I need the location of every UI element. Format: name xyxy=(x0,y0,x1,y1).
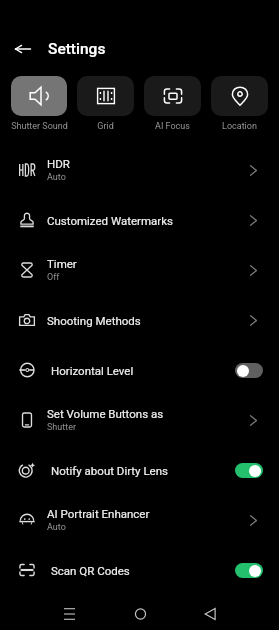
staticText: Settings xyxy=(48,40,106,58)
button[interactable]: AI Portrait Enhancer xyxy=(0,495,279,545)
button[interactable]: HDR xyxy=(0,145,279,195)
button[interactable]: Recents xyxy=(34,598,105,630)
staticText: Off xyxy=(47,272,60,283)
button[interactable]: Back xyxy=(6,32,39,65)
button[interactable]: Scan QR Codes xyxy=(0,545,279,595)
button[interactable]: On xyxy=(235,463,263,478)
button[interactable]: Off xyxy=(235,363,263,378)
staticText: Timer xyxy=(47,257,77,270)
button[interactable]: Customized Watermarks xyxy=(0,195,279,245)
staticText: Scan QR Codes xyxy=(51,564,130,577)
staticText: AI Focus xyxy=(155,121,190,132)
button[interactable]: Horizontal Level xyxy=(0,345,279,395)
staticText: Customized Watermarks xyxy=(47,214,173,227)
button[interactable]: Shutter Sound xyxy=(11,76,67,135)
button[interactable]: On xyxy=(235,563,263,578)
staticText: Shutter xyxy=(47,422,76,433)
button[interactable]: AI Focus xyxy=(144,76,201,135)
button[interactable]: Location xyxy=(211,76,268,135)
staticText: Grid xyxy=(97,121,114,132)
staticText: Auto xyxy=(47,172,66,183)
button[interactable]: Notify about Dirty Lens xyxy=(0,445,279,495)
staticText: Auto xyxy=(47,522,66,533)
staticText: Set Volume Buttons as xyxy=(47,407,164,420)
button[interactable]: Back xyxy=(175,598,245,630)
staticText: Notify about Dirty Lens xyxy=(51,464,168,477)
staticText: AI Portrait Enhancer xyxy=(47,507,150,520)
button[interactable]: Timer xyxy=(0,245,279,295)
button[interactable]: Grid xyxy=(77,76,134,135)
staticText: Shutter Sound xyxy=(11,121,67,132)
button[interactable]: Set Volume Buttons as xyxy=(0,395,279,445)
staticText: Shooting Methods xyxy=(47,314,141,327)
staticText: HDR xyxy=(47,157,70,170)
button[interactable]: Home xyxy=(105,598,175,630)
staticText: Location xyxy=(222,121,257,132)
staticText: Horizontal Level xyxy=(51,364,134,377)
button[interactable]: Shooting Methods xyxy=(0,295,279,345)
